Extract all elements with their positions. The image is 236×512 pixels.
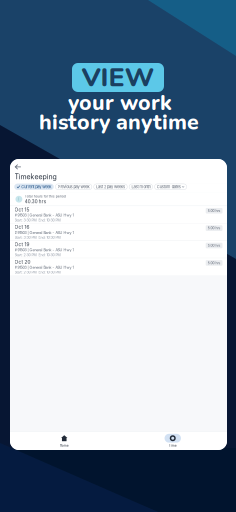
staticText: history anytime [39,108,199,137]
staticText: 8.00 hrs [208,226,221,230]
staticText: # 91503 | General Bank - ASU Hwy 1 [14,265,73,270]
staticText: Start: 2:30 PM End: 10:30 PM [14,270,60,274]
button[interactable]: Oct 15 [10,206,227,223]
staticText: Start: 3:30 PM End: 10:30 PM [14,235,60,240]
staticText: Start: 3:30 PM End: 10:30 PM [14,218,60,222]
staticText: your work [68,88,172,118]
staticText: # 91503 | General Bank - ASU Hwy 1 [14,248,73,252]
button[interactable]: Oct 16 [10,223,227,240]
staticText: Current pay week [21,184,51,189]
staticText: # 91503 | General Bank - ASU Hwy 1 [14,213,73,217]
button[interactable]: Home [10,431,118,450]
button[interactable]: Last 2 pay weeks [94,184,127,190]
button[interactable]: Last month [129,184,153,190]
staticText: Custom dates [157,184,181,189]
staticText: # 91503 | General Bank - ASU Hwy 1 [14,230,73,235]
button[interactable]: Custom dates [154,184,187,190]
staticText: Time [169,444,177,447]
button[interactable]: Oct 19 [10,241,227,258]
staticText: 8.00 hrs [208,261,221,265]
button[interactable]: Previous pay week [55,184,92,190]
staticText: 8.00 hrs [208,243,221,247]
staticText: Oct 20 [14,259,30,265]
button[interactable]: Current pay week [14,184,53,190]
staticText: 40.30 hrs [25,199,46,204]
staticText: Previous pay week [58,184,90,189]
staticText: 8.00 hrs [208,209,221,213]
staticText: Oct 19 [14,242,29,247]
staticText: Home [60,444,69,447]
staticText: Total hours for this period [25,194,66,198]
button[interactable]: Back [14,163,25,170]
staticText: i [18,197,19,202]
button[interactable]: Time [118,431,227,450]
staticText: Start: 2:30 PM End: 10:30 PM [14,253,60,257]
staticText: Oct 16 [14,224,29,230]
button[interactable]: Oct 20 [10,258,227,275]
staticText: Timekeeping [14,172,56,181]
staticText: VIEW [81,59,154,96]
staticText: Oct 15 [14,207,29,212]
staticText: Last month [131,184,150,189]
staticText: Last 2 pay weeks [96,184,125,189]
